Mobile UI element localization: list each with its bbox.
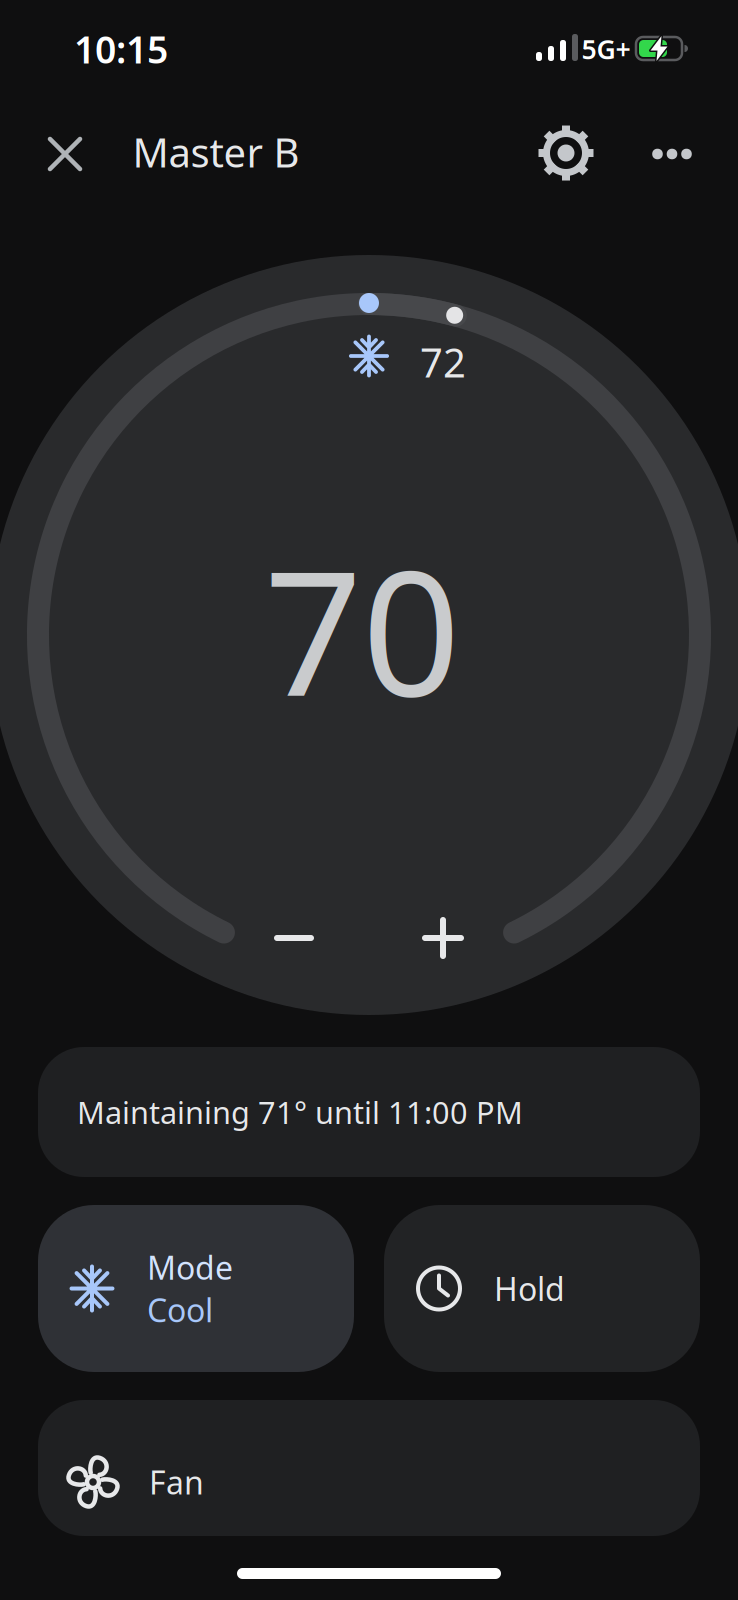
button[interactable]: Hold	[384, 1205, 700, 1372]
staticText: Fan	[149, 1461, 204, 1503]
staticText: Maintaining 71° until 11:00 PM	[77, 1092, 523, 1132]
staticText: Cool	[147, 1288, 213, 1331]
staticText: 10:15	[74, 24, 168, 74]
button[interactable]: Decrease temperature	[258, 902, 330, 974]
button[interactable]: Maintaining 71° until 11:00 PM	[38, 1047, 700, 1177]
button[interactable]: Settings	[538, 125, 594, 181]
staticText: Hold	[494, 1267, 565, 1310]
staticText: Master B	[132, 125, 299, 178]
button[interactable]: Fan	[38, 1400, 700, 1536]
staticText: 70	[264, 515, 460, 743]
staticText: 72	[420, 335, 466, 388]
button[interactable]: Mode: Cool	[38, 1205, 354, 1372]
button[interactable]: Increase temperature	[407, 902, 479, 974]
staticText: Mode	[147, 1246, 233, 1288]
button[interactable]: More options	[650, 142, 694, 166]
button[interactable]: Close	[41, 130, 89, 178]
staticText: 5G+	[581, 31, 630, 67]
